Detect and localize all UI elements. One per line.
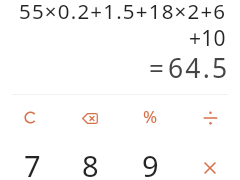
staticText: 7 [24,146,41,180]
staticText: 64.5 [168,50,230,86]
button[interactable]: 7 [0,140,60,180]
staticText: +10 [189,24,226,53]
button[interactable]: 8 [60,140,120,180]
staticText: 55×0.2+1.5+18×2+6 [19,0,227,25]
button[interactable] [60,94,120,140]
button[interactable] [0,94,60,140]
button[interactable] [180,94,240,140]
button[interactable] [180,140,240,180]
staticText: 8 [82,146,99,180]
staticText: % [143,105,158,128]
staticText: 9 [142,146,159,180]
button[interactable]: % [120,94,180,140]
staticText: = [149,50,164,85]
button[interactable]: 9 [120,140,180,180]
